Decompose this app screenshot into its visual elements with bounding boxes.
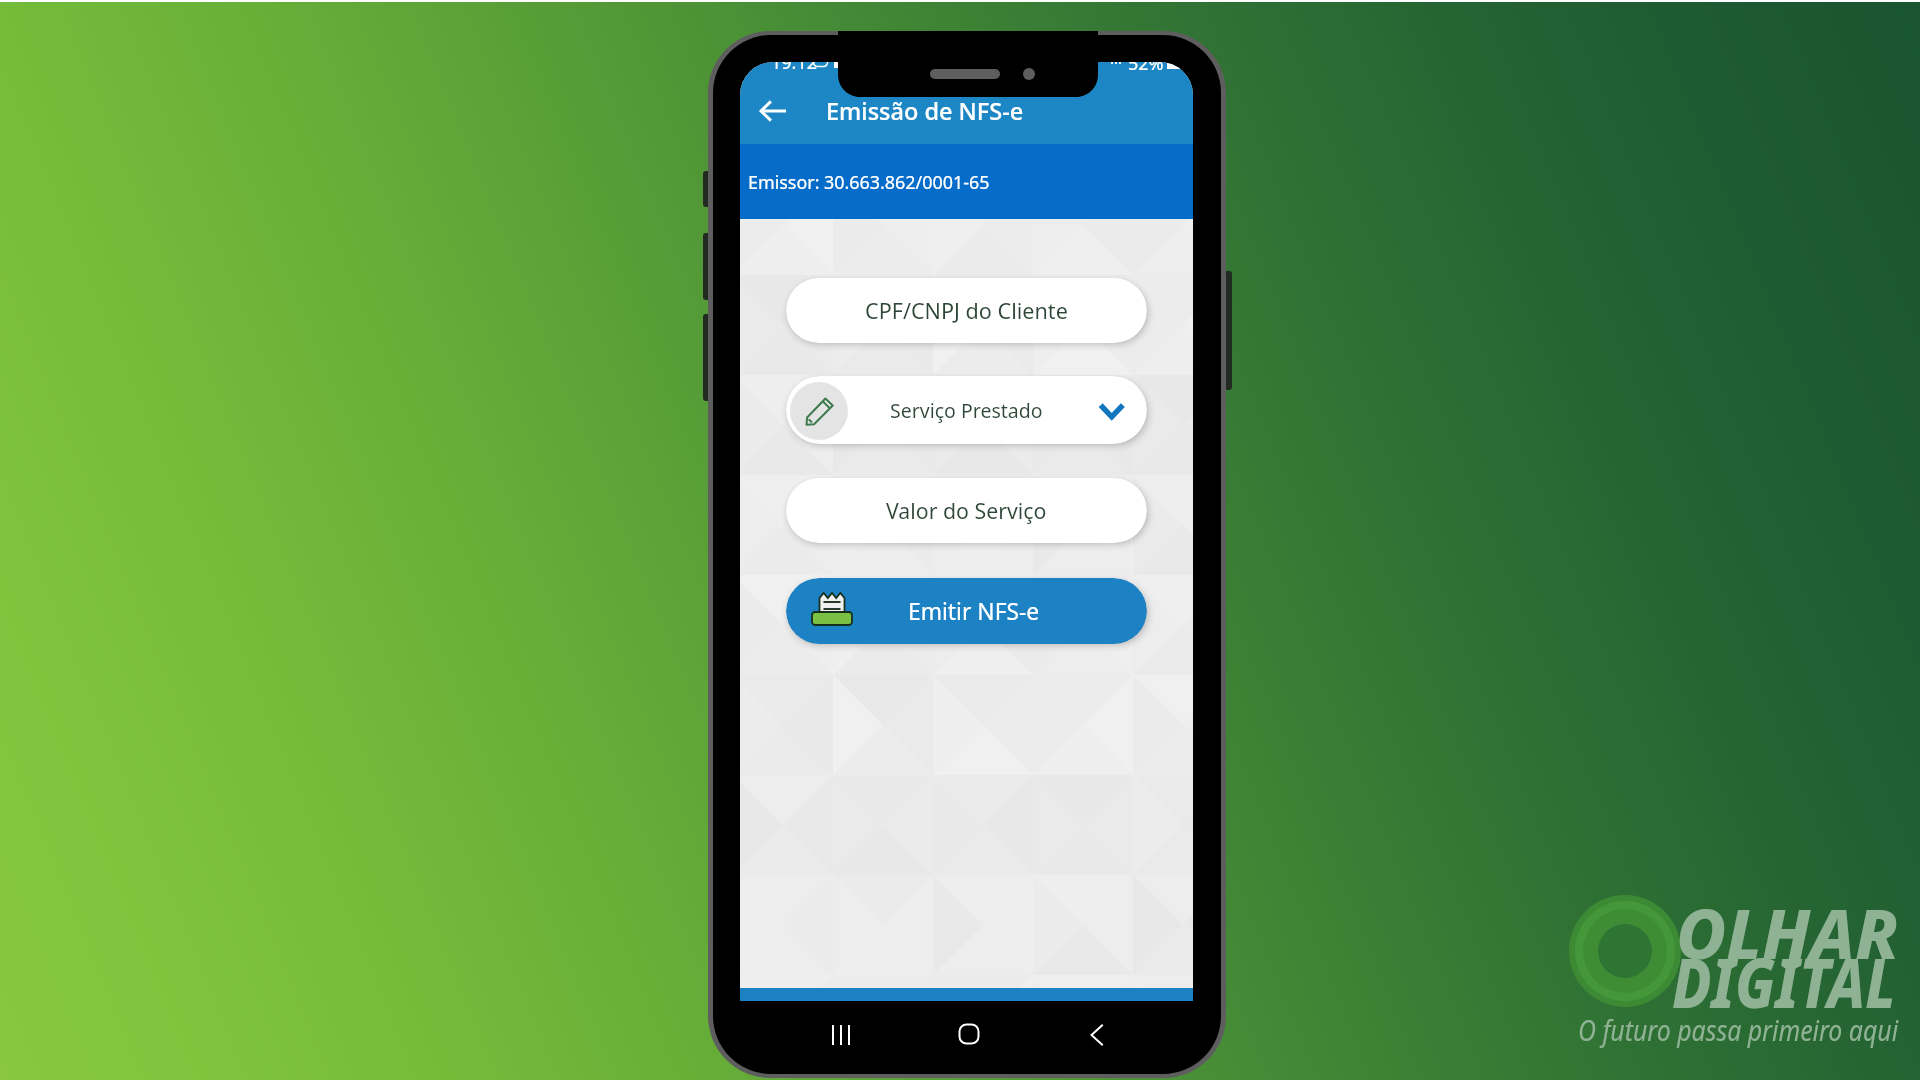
button[interactable]: Back	[1074, 1012, 1120, 1058]
staticText: 19:12	[771, 62, 818, 75]
staticText: O futuro passa primeiro aqui	[1578, 1010, 1898, 1049]
staticText: Emitir NFS-e	[908, 596, 1040, 627]
button[interactable]: Home	[946, 1011, 992, 1057]
staticText: DIGITAL	[1672, 935, 1896, 1028]
button[interactable]: Emitir NFS-e	[786, 578, 1147, 644]
button[interactable]: Valor do Serviço	[786, 478, 1147, 543]
staticText: CPF/CNPJ do Cliente	[865, 296, 1068, 325]
button[interactable]: Serviço Prestado	[786, 376, 1147, 444]
button[interactable]: Recent apps	[820, 1012, 866, 1058]
staticText: Serviço Prestado	[890, 397, 1043, 424]
staticText: 52%	[1128, 62, 1164, 76]
staticText: Emissão de NFS-e	[826, 95, 1024, 127]
staticText: OLHAR	[1676, 886, 1899, 979]
staticText: Valor do Serviço	[886, 496, 1047, 525]
button[interactable]: Navigate back	[750, 88, 795, 133]
staticText: Emissor: 30.663.862/0001-65	[748, 170, 990, 194]
button[interactable]: CPF/CNPJ do Cliente	[786, 278, 1147, 343]
